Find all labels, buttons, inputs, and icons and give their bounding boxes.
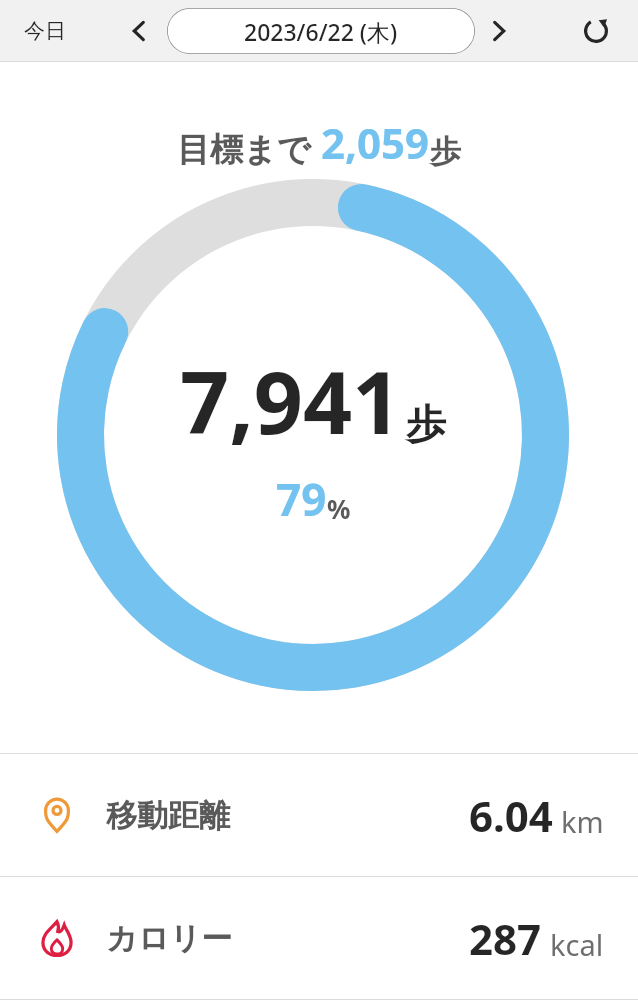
button[interactable]: 今日 [12, 10, 78, 52]
staticText: km [561, 802, 604, 841]
staticText: 79 [276, 469, 327, 529]
staticText: 今日 [24, 18, 66, 44]
staticText: 287 [469, 910, 542, 967]
staticText: % [327, 491, 351, 526]
button[interactable]: カロリー [0, 877, 638, 999]
button[interactable]: Next day [476, 8, 522, 54]
button[interactable]: Previous day [116, 8, 162, 54]
staticText: kcal [550, 925, 604, 964]
button[interactable]: Refresh [572, 7, 620, 55]
button[interactable]: 2023/6/22 (木) [167, 8, 475, 54]
staticText: 2,059 [321, 114, 430, 171]
staticText: 歩 [406, 399, 446, 449]
staticText: 歩 [430, 132, 461, 171]
staticText: カロリー [106, 919, 233, 958]
staticText: 目標まで [177, 129, 311, 171]
staticText: 7,941 [180, 342, 402, 459]
button[interactable]: 移動距離 [0, 754, 638, 876]
staticText: 移動距離 [106, 796, 230, 835]
staticText: 6.04 [469, 787, 553, 844]
staticText: 2023/6/22 (木) [244, 16, 398, 47]
